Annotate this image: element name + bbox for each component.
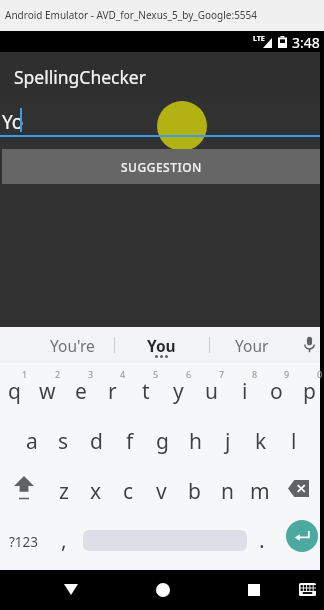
staticText: 6 xyxy=(186,368,192,380)
button[interactable]: 8 xyxy=(228,363,261,413)
staticText: n xyxy=(221,477,234,506)
staticText: l xyxy=(291,427,297,456)
staticText: a xyxy=(26,427,38,456)
button[interactable]: k xyxy=(244,413,277,463)
staticText: LTE xyxy=(253,34,265,44)
button[interactable]: Your xyxy=(209,327,295,363)
staticText: 1 xyxy=(22,368,28,380)
button[interactable]: m xyxy=(243,463,276,513)
staticText: t xyxy=(142,377,150,406)
button[interactable]: Voice input xyxy=(293,329,324,361)
button[interactable]: h xyxy=(179,413,212,463)
staticText: 3:48 xyxy=(292,33,320,52)
button[interactable]: g xyxy=(146,413,179,463)
button[interactable]: You're xyxy=(30,327,114,363)
staticText: k xyxy=(255,427,267,456)
staticText: You xyxy=(147,335,176,356)
staticText: j xyxy=(225,427,231,456)
staticText: . xyxy=(259,526,265,555)
staticText: 4 xyxy=(120,368,126,380)
button[interactable]: s xyxy=(47,413,80,463)
button[interactable]: b xyxy=(178,463,211,513)
button[interactable]: a xyxy=(15,413,48,463)
button[interactable]: 5 xyxy=(129,363,162,413)
staticText: , xyxy=(61,526,67,555)
button[interactable]: d xyxy=(80,413,113,463)
staticText: o xyxy=(270,377,283,406)
button[interactable]: 4 xyxy=(96,363,129,413)
button[interactable]: , xyxy=(46,513,80,563)
staticText: h xyxy=(189,427,202,456)
button[interactable]: l xyxy=(277,413,310,463)
staticText: 0 xyxy=(317,368,323,380)
staticText: ?123 xyxy=(9,533,39,551)
staticText: s xyxy=(58,427,69,456)
button[interactable]: c xyxy=(112,463,145,513)
button[interactable]: 2 xyxy=(31,363,64,413)
button[interactable]: . xyxy=(247,513,275,563)
staticText: x xyxy=(90,477,102,506)
staticText: w xyxy=(39,377,56,406)
staticText: q xyxy=(8,377,21,406)
button[interactable]: Backspace xyxy=(276,463,320,513)
staticText: SpellingChecker xyxy=(14,65,146,89)
button[interactable]: Shift xyxy=(0,463,47,513)
button[interactable]: You xyxy=(114,327,209,363)
button[interactable]: 0 xyxy=(293,363,324,413)
staticText: You're xyxy=(50,335,95,356)
staticText: e xyxy=(75,377,87,406)
button[interactable]: 3 xyxy=(64,363,97,413)
button[interactable]: 7 xyxy=(195,363,228,413)
staticText: b xyxy=(188,477,201,506)
button[interactable]: 1 xyxy=(0,363,31,413)
button[interactable]: Enter xyxy=(277,513,324,561)
staticText: SUGGESTION xyxy=(121,159,202,175)
button[interactable]: ?123 xyxy=(0,513,46,563)
staticText: i xyxy=(242,377,248,406)
staticText: u xyxy=(205,377,218,406)
staticText: Android Emulator - AVD_for_Nexus_5_by_Go… xyxy=(5,8,258,22)
button[interactable]: SUGGESTION xyxy=(2,149,320,184)
staticText: f xyxy=(126,427,134,456)
staticText: 7 xyxy=(219,368,225,380)
button[interactable]: 9 xyxy=(260,363,293,413)
staticText: Yo xyxy=(2,109,24,135)
button[interactable]: v xyxy=(145,463,178,513)
button[interactable]: Back xyxy=(55,574,86,605)
staticText: 3 xyxy=(88,368,94,380)
staticText: Your xyxy=(235,335,269,356)
staticText: r xyxy=(108,377,117,406)
staticText: v xyxy=(156,477,167,506)
button[interactable]: x xyxy=(79,463,112,513)
staticText: g xyxy=(156,427,169,456)
staticText: 9 xyxy=(284,368,290,380)
staticText: 2 xyxy=(55,368,61,380)
staticText: p xyxy=(303,377,316,406)
staticText: d xyxy=(90,427,103,456)
staticText: c xyxy=(123,477,134,506)
button[interactable]: 6 xyxy=(162,363,195,413)
staticText: z xyxy=(59,477,69,506)
staticText: m xyxy=(250,477,270,506)
button[interactable]: z xyxy=(47,463,80,513)
button[interactable]: Home xyxy=(147,574,178,605)
button[interactable]: n xyxy=(211,463,244,513)
button[interactable]: Recent apps xyxy=(238,574,269,605)
staticText: y xyxy=(173,377,184,406)
button[interactable]: f xyxy=(113,413,146,463)
staticText: 8 xyxy=(252,368,258,380)
staticText: 5 xyxy=(153,368,159,380)
button[interactable]: Switch keyboard xyxy=(292,574,323,605)
button[interactable]: j xyxy=(211,413,244,463)
